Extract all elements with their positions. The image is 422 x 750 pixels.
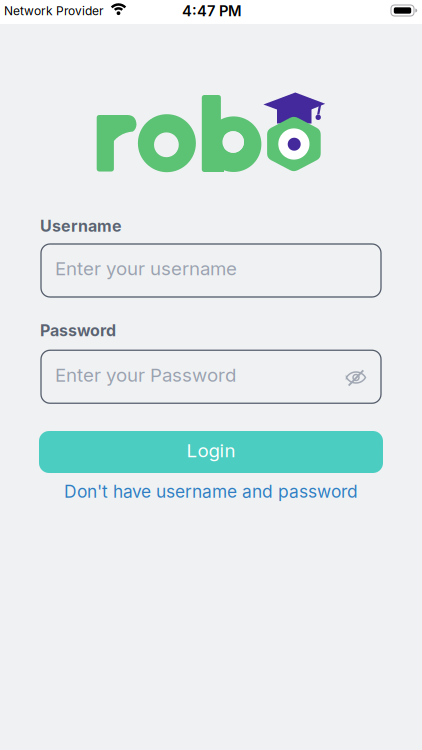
staticText: Network Provider (4, 4, 104, 18)
staticText: Username (40, 217, 122, 235)
staticText: Enter your Password (55, 364, 236, 386)
button[interactable]: Enter your username (41, 244, 381, 297)
button[interactable]: Don't have username and password (64, 481, 358, 502)
staticText: Don't have username and password (64, 481, 358, 502)
button[interactable]: Enter your Password (41, 350, 381, 403)
staticText: Enter your username (55, 257, 237, 279)
staticText: Password (40, 321, 116, 340)
button[interactable]: Show password (346, 369, 366, 386)
staticText: 4:47 PM (182, 2, 242, 20)
staticText: Login (186, 439, 235, 461)
button[interactable]: Login (39, 431, 383, 473)
